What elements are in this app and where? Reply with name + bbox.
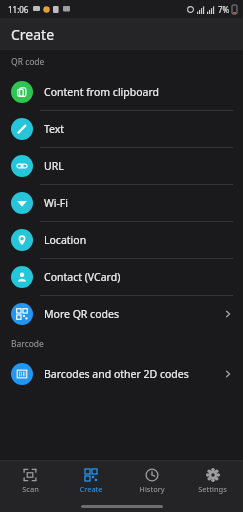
staticText: URL (44, 159, 233, 173)
button[interactable]: History (121, 461, 182, 501)
staticText: 7% (218, 4, 230, 15)
button[interactable]: Settings (182, 461, 243, 501)
staticText: 11:06 (8, 4, 29, 15)
button[interactable]: Scan (0, 461, 60, 501)
staticText: QR code (11, 56, 45, 68)
staticText: More QR codes (44, 307, 223, 321)
staticText: Settings (198, 484, 227, 494)
staticText: Location (44, 233, 233, 247)
staticText: Contact (VCard) (44, 270, 233, 284)
button[interactable]: Wi-Fi (0, 185, 243, 221)
staticText: Text (44, 122, 233, 136)
staticText: History (139, 484, 165, 494)
staticText: Scan (22, 484, 39, 494)
button[interactable]: Text (0, 111, 243, 147)
button[interactable]: Content from clipboard (0, 74, 243, 110)
button[interactable]: URL (0, 148, 243, 184)
staticText: Wi-Fi (44, 196, 233, 210)
button[interactable]: Create (60, 461, 121, 501)
staticText: Barcode (11, 338, 44, 350)
button[interactable]: Location (0, 222, 243, 258)
staticText: Content from clipboard (44, 85, 233, 99)
button[interactable]: More QR codes (0, 296, 243, 332)
button[interactable]: Barcodes and other 2D codes (0, 356, 243, 392)
staticText: Barcodes and other 2D codes (44, 367, 223, 381)
button[interactable]: Contact (VCard) (0, 259, 243, 295)
staticText: Create (79, 484, 103, 494)
staticText: Create (11, 25, 55, 44)
